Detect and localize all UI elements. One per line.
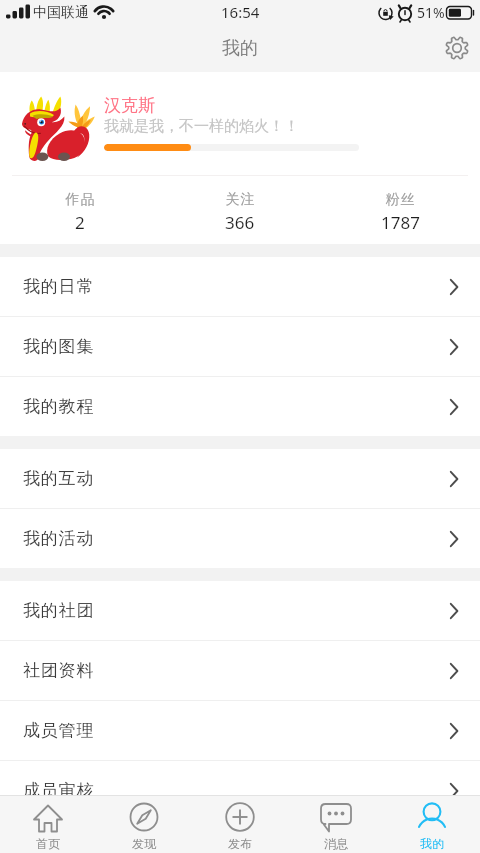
staticText: 发布: [228, 836, 253, 851]
staticText: 我的社团: [23, 600, 95, 621]
button[interactable]: 我的日常: [0, 257, 480, 316]
button[interactable]: 我的活动: [0, 509, 480, 568]
staticText: 我的日常: [23, 276, 95, 297]
staticText: 我的: [222, 37, 258, 60]
button[interactable]: Settings: [437, 28, 477, 68]
button[interactable]: 我的互动: [0, 449, 480, 508]
staticText: 我的图集: [23, 336, 95, 357]
staticText: 2: [75, 211, 85, 234]
staticText: 汉克斯: [104, 95, 155, 116]
staticText: 51%: [417, 3, 445, 22]
button[interactable]: Post: [192, 796, 288, 853]
staticText: 成员审核: [23, 780, 95, 795]
staticText: 我的活动: [23, 528, 95, 549]
staticText: 关注: [225, 191, 255, 209]
button[interactable]: 我的教程: [0, 377, 480, 436]
staticText: 首页: [36, 836, 61, 851]
button[interactable]: 我的社团: [0, 581, 480, 640]
button[interactable]: 我的图集: [0, 317, 480, 376]
button[interactable]: 成员审核: [0, 761, 480, 795]
button[interactable]: Profile: [384, 796, 480, 853]
staticText: 发现: [132, 836, 157, 851]
button[interactable]: 汉克斯: [0, 72, 480, 175]
staticText: 我的教程: [23, 396, 95, 417]
button[interactable]: Home: [0, 796, 96, 853]
staticText: 消息: [324, 836, 349, 851]
staticText: 1787: [381, 211, 420, 234]
staticText: 我的互动: [23, 468, 95, 489]
staticText: 粉丝: [385, 191, 415, 209]
staticText: 366: [225, 211, 255, 234]
button[interactable]: Discover: [96, 796, 192, 853]
staticText: 成员管理: [23, 720, 95, 741]
staticText: 16:54: [221, 2, 260, 22]
staticText: 我就是我，不一样的焰火！！: [104, 117, 299, 136]
staticText: 社团资料: [23, 660, 95, 681]
staticText: 中国联通: [33, 4, 89, 22]
button[interactable]: 关注: [160, 176, 320, 244]
button[interactable]: 粉丝: [320, 176, 480, 244]
staticText: 我的: [420, 836, 445, 851]
button[interactable]: 作品: [0, 176, 160, 244]
staticText: 作品: [65, 191, 95, 209]
button[interactable]: Messages: [288, 796, 384, 853]
button[interactable]: 成员管理: [0, 701, 480, 760]
button[interactable]: 社团资料: [0, 641, 480, 700]
